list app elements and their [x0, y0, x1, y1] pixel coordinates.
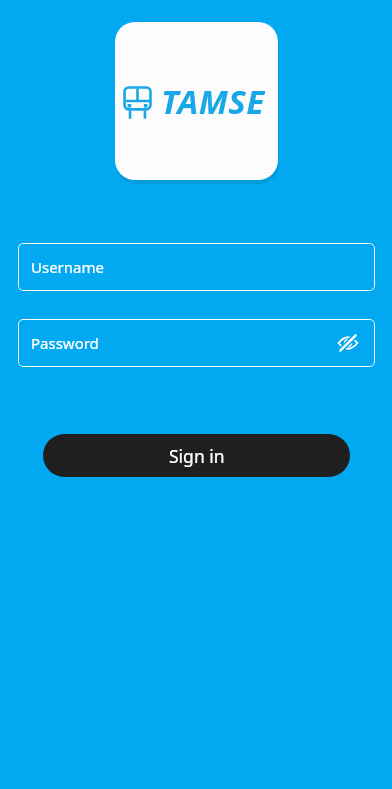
- staticText: Sign in: [169, 444, 225, 468]
- staticText: Password: [31, 333, 99, 353]
- staticText: Username: [31, 257, 104, 277]
- button[interactable]: Bus logo: [115, 22, 278, 180]
- button[interactable]: Toggle password visibility: [335, 330, 361, 356]
- button[interactable]: Sign in: [43, 434, 350, 477]
- button[interactable]: Username: [18, 243, 375, 291]
- button[interactable]: Password: [18, 319, 375, 367]
- staticText: TAMSE: [161, 79, 265, 124]
- other: Bus logo: [122, 85, 153, 119]
